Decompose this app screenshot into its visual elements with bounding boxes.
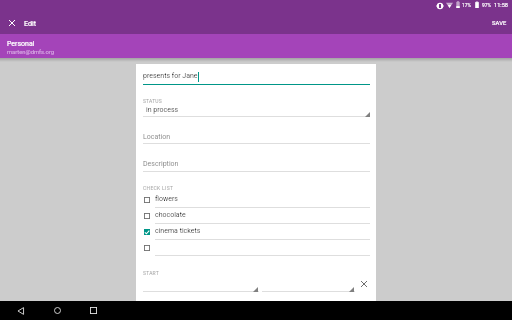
staticText: in process xyxy=(146,106,179,114)
button[interactable] xyxy=(155,195,369,206)
staticText: Personal xyxy=(7,40,35,48)
button[interactable]: Checked: cinema tickets xyxy=(140,225,154,239)
staticText: 17% xyxy=(462,3,471,9)
staticText: chocolate xyxy=(155,211,186,219)
staticText: CHECK LIST xyxy=(143,185,174,191)
staticText: Description xyxy=(143,160,179,168)
button[interactable] xyxy=(143,105,369,117)
button[interactable]: Close xyxy=(2,13,21,32)
button[interactable] xyxy=(155,211,369,222)
button[interactable]: Personal xyxy=(0,34,512,58)
button[interactable]: Recent apps xyxy=(86,301,100,320)
button[interactable]: Unchecked: xyxy=(140,241,154,255)
button[interactable] xyxy=(143,131,369,143)
staticText: START xyxy=(143,270,159,276)
staticText: cinema tickets xyxy=(155,227,201,235)
button[interactable]: Home xyxy=(50,301,64,320)
button[interactable] xyxy=(143,158,369,170)
button[interactable] xyxy=(143,70,369,86)
staticText: 11:58 xyxy=(494,2,508,9)
staticText: marten@dmfs.org xyxy=(7,49,55,56)
button[interactable]: Unchecked: flowers xyxy=(140,193,154,207)
staticText: presents for Jane xyxy=(143,72,198,80)
staticText: 97% xyxy=(482,3,491,9)
button[interactable]: Unchecked: chocolate xyxy=(140,209,154,223)
staticText: SAVE xyxy=(492,20,507,27)
button[interactable] xyxy=(155,227,369,238)
staticText: Location xyxy=(143,133,171,141)
button[interactable]: Clear start xyxy=(357,277,370,290)
button[interactable]: Back xyxy=(14,301,28,320)
button[interactable]: SAVE xyxy=(489,14,510,33)
staticText: Edit xyxy=(24,19,37,27)
staticText: flowers xyxy=(155,195,178,203)
staticText: STATUS xyxy=(143,98,162,104)
